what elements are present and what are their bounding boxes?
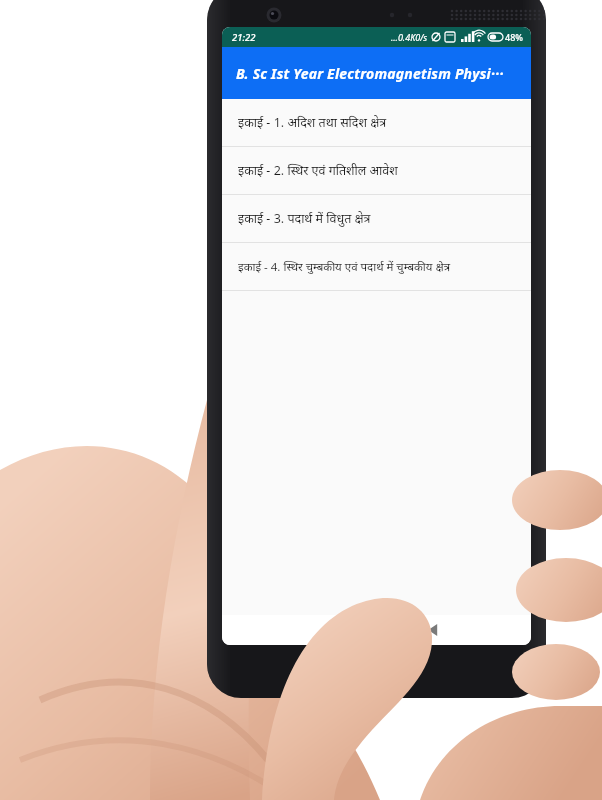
staticText: 21:22: [232, 31, 256, 44]
staticText: इकाई - 4. स्थिर चुम्बकीय एवं पदार्थ में …: [238, 259, 451, 275]
staticText: B. Sc Ist Year Electromagnetism Physi···: [236, 64, 517, 83]
staticText: 48%: [505, 31, 523, 43]
button[interactable]: B. Sc Ist Year Electromagnetism Physi···: [222, 47, 531, 99]
button[interactable]: Back: [420, 617, 446, 643]
button[interactable]: इकाई - 2. स्थिर एवं गतिशील आवेश: [222, 147, 531, 194]
staticText: इकाई - 3. पदार्थ में विधुत क्षेत्र: [238, 210, 371, 227]
staticText: इकाई - 2. स्थिर एवं गतिशील आवेश: [238, 162, 398, 179]
button[interactable]: इकाई - 3. पदार्थ में विधुत क्षेत्र: [222, 195, 531, 242]
button[interactable]: इकाई - 4. स्थिर चुम्बकीय एवं पदार्थ में …: [222, 243, 531, 290]
staticText: ...0.4K0/s: [391, 31, 428, 43]
staticText: इकाई - 1. अदिश तथा सदिश क्षेत्र: [238, 114, 387, 131]
button[interactable]: इकाई - 1. अदिश तथा सदिश क्षेत्र: [222, 99, 531, 146]
